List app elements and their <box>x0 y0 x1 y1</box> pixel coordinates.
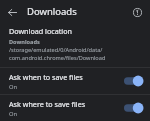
staticText: On <box>9 83 18 91</box>
button[interactable]: Toggle <box>122 101 144 115</box>
staticText: Download location <box>9 26 72 36</box>
button[interactable]: Ask when to save files <box>0 68 150 94</box>
staticText: On <box>9 110 18 118</box>
button[interactable]: Ask where to save files <box>0 95 150 121</box>
staticText: Ask where to save files <box>9 99 86 109</box>
button[interactable]: Toggle <box>122 74 144 88</box>
button[interactable]: Help and feedback <box>129 4 145 20</box>
staticText: /storage/emulated/0/Android/data/com.and… <box>9 46 141 62</box>
staticText: Downloads <box>9 38 42 46</box>
staticText: Downloads <box>27 5 77 18</box>
button[interactable]: Back <box>4 4 20 20</box>
staticText: Ask when to save files <box>9 72 83 82</box>
button[interactable]: Download location <box>0 23 150 67</box>
